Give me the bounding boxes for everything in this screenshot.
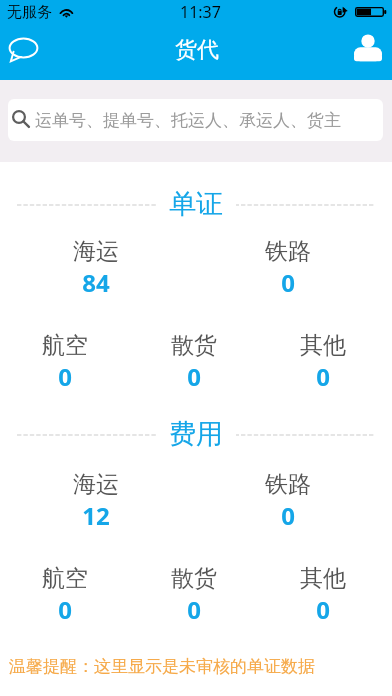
staticText: 单证 <box>169 187 223 221</box>
button[interactable]: 其他 <box>258 331 387 393</box>
staticText: 0 <box>58 360 72 393</box>
staticText: 0 <box>58 593 72 626</box>
staticText: 温馨提醒：这里显示是未审核的单证数据 <box>9 656 315 677</box>
staticText: 0 <box>187 593 201 626</box>
staticText: 其他 <box>300 564 346 593</box>
staticText: 货代 <box>175 36 219 64</box>
staticText: 其他 <box>300 331 346 360</box>
staticText: 0 <box>187 360 201 393</box>
button[interactable]: Messages <box>0 28 52 80</box>
button[interactable]: 航空 <box>0 564 129 626</box>
staticText: 12 <box>82 499 110 532</box>
staticText: 散货 <box>171 331 217 360</box>
staticText: 11:37 <box>180 1 221 23</box>
staticText: 航空 <box>42 564 88 593</box>
staticText: 散货 <box>171 564 217 593</box>
staticText: 无服务 <box>7 3 52 22</box>
button[interactable]: 运单号、提单号、托运人、承运人、货主 <box>8 99 383 141</box>
staticText: 0 <box>281 266 295 299</box>
button[interactable]: 海运 <box>0 237 192 299</box>
staticText: 0 <box>316 593 330 626</box>
staticText: 铁路 <box>265 470 311 499</box>
button[interactable]: 其他 <box>258 564 387 626</box>
staticText: 航空 <box>42 331 88 360</box>
button[interactable]: 散货 <box>129 331 258 393</box>
button[interactable]: 散货 <box>129 564 258 626</box>
button[interactable]: 航空 <box>0 331 129 393</box>
button[interactable]: 海运 <box>0 470 192 532</box>
staticText: 0 <box>281 499 295 532</box>
button[interactable]: 铁路 <box>192 237 384 299</box>
staticText: 海运 <box>73 237 119 266</box>
staticText: 运单号、提单号、托运人、承运人、货主 <box>35 110 341 131</box>
staticText: 海运 <box>73 470 119 499</box>
staticText: 0 <box>316 360 330 393</box>
staticText: 费用 <box>169 417 223 451</box>
staticText: 84 <box>82 266 110 299</box>
button[interactable]: Profile <box>340 28 392 80</box>
staticText: 铁路 <box>265 237 311 266</box>
button[interactable]: 铁路 <box>192 470 384 532</box>
